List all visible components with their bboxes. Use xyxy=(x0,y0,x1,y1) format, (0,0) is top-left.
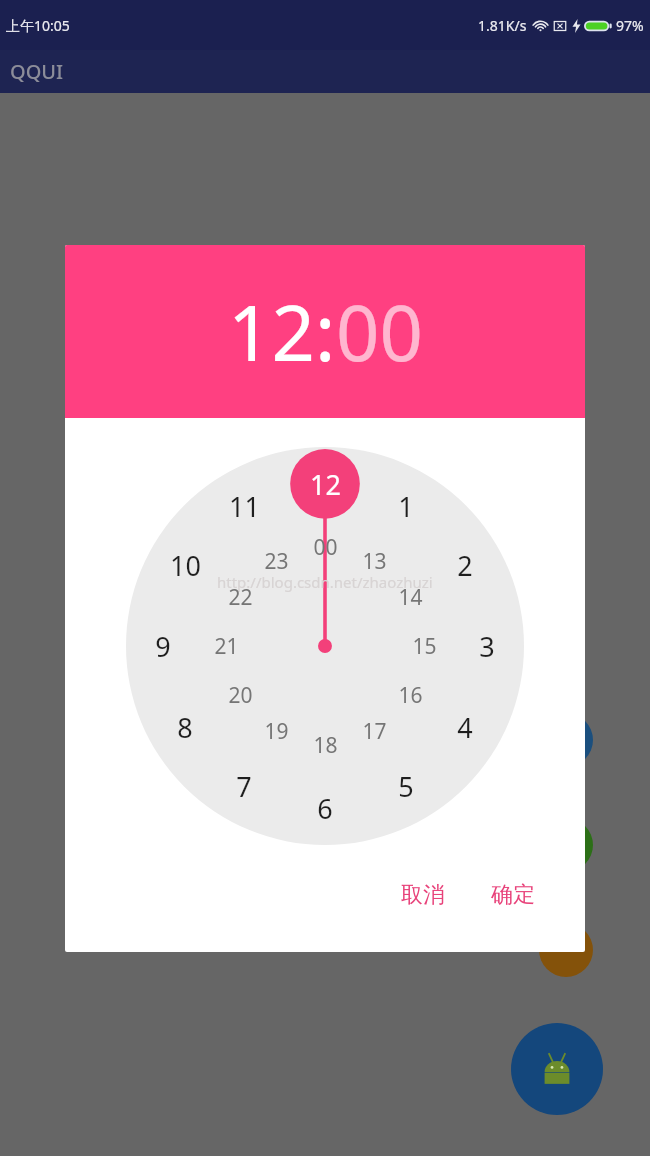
staticText: 8 xyxy=(177,709,193,746)
button[interactable]: 00 xyxy=(301,523,349,571)
button[interactable]: 21 xyxy=(202,622,250,670)
staticText: 00 xyxy=(313,533,338,562)
button[interactable]: 11 xyxy=(213,475,275,537)
button[interactable]: 12 xyxy=(294,453,356,515)
staticText: 10 xyxy=(170,547,201,584)
button[interactable]: 12 xyxy=(228,280,315,384)
button[interactable]: 8 xyxy=(154,696,216,758)
staticText: 11 xyxy=(229,488,260,525)
button[interactable]: Action two xyxy=(539,818,593,872)
staticText: 21 xyxy=(214,632,239,661)
staticText: 13 xyxy=(362,547,387,576)
button[interactable]: Action three xyxy=(539,923,593,977)
button[interactable]: 5 xyxy=(375,755,437,817)
button[interactable]: 16 xyxy=(386,671,434,719)
staticText: 22 xyxy=(228,583,253,612)
button[interactable]: 22 xyxy=(216,573,264,621)
button[interactable]: 17 xyxy=(350,707,398,755)
button[interactable]: 15 xyxy=(400,622,448,670)
button[interactable]: 确定 xyxy=(481,873,545,917)
staticText: 23 xyxy=(264,547,289,576)
staticText: 取消 xyxy=(401,881,445,909)
staticText: 1 xyxy=(398,488,414,525)
staticText: 17 xyxy=(362,717,387,746)
button[interactable]: 9 xyxy=(132,615,194,677)
staticText: http://blog.csdn.net/zhaozhuzi xyxy=(217,572,433,592)
button[interactable]: 7 xyxy=(213,755,275,817)
staticText: 6 xyxy=(317,790,333,827)
staticText: 确定 xyxy=(491,881,535,909)
button[interactable]: 取消 xyxy=(391,873,455,917)
button[interactable]: Action one xyxy=(539,713,593,767)
button[interactable]: 4 xyxy=(434,696,496,758)
button[interactable]: 3 xyxy=(456,615,518,677)
button[interactable]: 18 xyxy=(301,721,349,769)
staticText: 16 xyxy=(398,681,423,710)
staticText: 14 xyxy=(398,583,423,612)
button[interactable]: 10 xyxy=(154,534,216,596)
staticText: 4 xyxy=(457,709,473,746)
staticText: 3 xyxy=(479,628,495,665)
button[interactable]: 13 xyxy=(350,537,398,585)
button[interactable]: 14 xyxy=(386,573,434,621)
staticText: 2 xyxy=(457,547,473,584)
staticText: 5 xyxy=(398,768,414,805)
staticText: 7 xyxy=(236,768,252,805)
staticText: 1.81K/s xyxy=(478,16,527,35)
staticText: QQUI xyxy=(10,58,64,85)
staticText: 15 xyxy=(412,632,437,661)
button[interactable]: 6 xyxy=(294,777,356,839)
staticText: 19 xyxy=(264,717,289,746)
staticText: 上午10:05 xyxy=(6,16,70,35)
button[interactable]: 23 xyxy=(252,537,300,585)
button[interactable]: Open actions xyxy=(511,1023,603,1115)
button[interactable]: 2 xyxy=(434,534,496,596)
staticText: 97% xyxy=(616,16,644,35)
staticText: 12 xyxy=(310,466,341,503)
button[interactable]: 19 xyxy=(252,707,300,755)
staticText: 9 xyxy=(155,628,171,665)
staticText: 20 xyxy=(228,681,253,710)
button[interactable]: 1 xyxy=(375,475,437,537)
button[interactable]: 00 xyxy=(336,280,423,384)
button[interactable]: 20 xyxy=(216,671,264,719)
staticText: : xyxy=(315,280,336,384)
staticText: 18 xyxy=(313,731,338,760)
